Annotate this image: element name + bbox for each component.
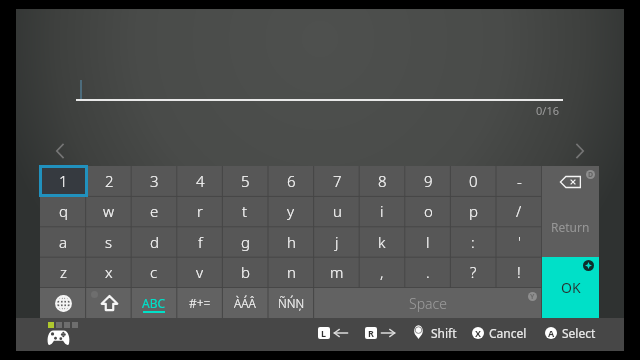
button[interactable]: f: [177, 227, 223, 257]
button[interactable]: p: [450, 196, 496, 226]
staticText: z: [60, 262, 67, 282]
button[interactable]: c: [131, 257, 177, 287]
button[interactable]: 6: [268, 166, 314, 196]
button[interactable]: 0: [450, 166, 496, 196]
button[interactable]: t: [222, 196, 268, 226]
button[interactable]: OK: [542, 257, 599, 318]
staticText: r: [197, 201, 203, 221]
staticText: 0/16: [536, 103, 559, 118]
button[interactable]: 9: [405, 166, 451, 196]
button[interactable]: r: [177, 196, 223, 226]
button[interactable]: ?: [450, 257, 496, 287]
button[interactable]: g: [222, 227, 268, 257]
button[interactable]: n: [268, 257, 314, 287]
button[interactable]: ÑŃŅ: [268, 288, 314, 318]
button[interactable]: 1: [39, 165, 88, 197]
staticText: ?: [470, 262, 477, 282]
staticText: m: [330, 262, 344, 282]
button[interactable]: x: [86, 257, 132, 287]
staticText: X: [475, 327, 482, 339]
button[interactable]: ABC: [131, 288, 177, 318]
button[interactable]: 1: [40, 166, 86, 196]
staticText: .: [426, 262, 430, 282]
button[interactable]: a: [40, 227, 86, 257]
staticText: l: [426, 232, 430, 252]
staticText: R: [368, 327, 374, 339]
staticText: t: [242, 201, 248, 221]
staticText: 0: [469, 171, 478, 191]
button[interactable]: Change language: [40, 288, 86, 318]
staticText: e: [150, 201, 159, 221]
button[interactable]: u: [314, 196, 360, 226]
staticText: h: [287, 232, 296, 252]
button[interactable]: y: [268, 196, 314, 226]
button[interactable]: i: [359, 196, 405, 226]
button[interactable]: d: [131, 227, 177, 257]
button[interactable]: z: [40, 257, 86, 287]
staticText: Return: [551, 219, 590, 235]
button[interactable]: 3: [131, 166, 177, 196]
staticText: 1: [59, 171, 68, 191]
button[interactable]: o: [405, 196, 451, 226]
button[interactable]: k: [359, 227, 405, 257]
staticText: /: [516, 201, 522, 221]
button[interactable]: v: [177, 257, 223, 287]
button[interactable]: Backspace: [542, 166, 599, 196]
button[interactable]: ': [496, 227, 542, 257]
staticText: OK: [561, 278, 581, 297]
staticText: x: [105, 262, 113, 282]
staticText: 6: [287, 171, 296, 191]
button[interactable]: 2: [86, 166, 132, 196]
staticText: 1: [59, 171, 68, 191]
button[interactable]: Previous page: [46, 138, 73, 165]
button[interactable]: #+=: [177, 288, 223, 318]
staticText: q: [59, 201, 68, 221]
staticText: w: [103, 201, 115, 221]
staticText: b: [241, 262, 250, 282]
button[interactable]: Return: [542, 196, 599, 257]
staticText: o: [424, 201, 433, 221]
staticText: 8: [378, 171, 387, 191]
staticText: ÀÁÂ: [234, 295, 256, 311]
button[interactable]: 4: [177, 166, 223, 196]
button[interactable]: .: [405, 257, 451, 287]
button[interactable]: b: [222, 257, 268, 287]
staticText: 9: [424, 171, 433, 191]
staticText: i: [380, 201, 384, 221]
button[interactable]: /: [496, 196, 542, 226]
staticText: ÑŃŅ: [278, 295, 305, 311]
staticText: Shift: [431, 325, 457, 341]
button[interactable]: ÀÁÂ: [222, 288, 268, 318]
staticText: v: [196, 262, 204, 282]
button[interactable]: 7: [314, 166, 360, 196]
staticText: -: [517, 171, 522, 191]
button[interactable]: s: [86, 227, 132, 257]
staticText: 4: [196, 171, 205, 191]
button[interactable]: w: [86, 196, 132, 226]
button[interactable]: e: [131, 196, 177, 226]
staticText: ABC: [142, 295, 166, 311]
button[interactable]: !: [496, 257, 542, 287]
staticText: a: [59, 232, 68, 252]
staticText: k: [378, 232, 386, 252]
button[interactable]: 8: [359, 166, 405, 196]
staticText: Select: [562, 325, 596, 341]
button[interactable]: h: [268, 227, 314, 257]
button[interactable]: :: [450, 227, 496, 257]
staticText: j: [335, 232, 339, 252]
button[interactable]: Shift: [86, 288, 132, 318]
staticText: d: [150, 232, 159, 252]
button[interactable]: j: [314, 227, 360, 257]
button[interactable]: m: [314, 257, 360, 287]
button[interactable]: 5: [222, 166, 268, 196]
button[interactable]: l: [405, 227, 451, 257]
staticText: c: [150, 262, 158, 282]
button[interactable]: ,: [359, 257, 405, 287]
other: Controller: [47, 330, 70, 345]
staticText: 2: [105, 171, 114, 191]
button[interactable]: Space: [314, 288, 542, 318]
button[interactable]: -: [496, 166, 542, 196]
staticText: A: [548, 327, 555, 339]
button[interactable]: q: [40, 196, 86, 226]
button[interactable]: Next page: [567, 138, 594, 165]
